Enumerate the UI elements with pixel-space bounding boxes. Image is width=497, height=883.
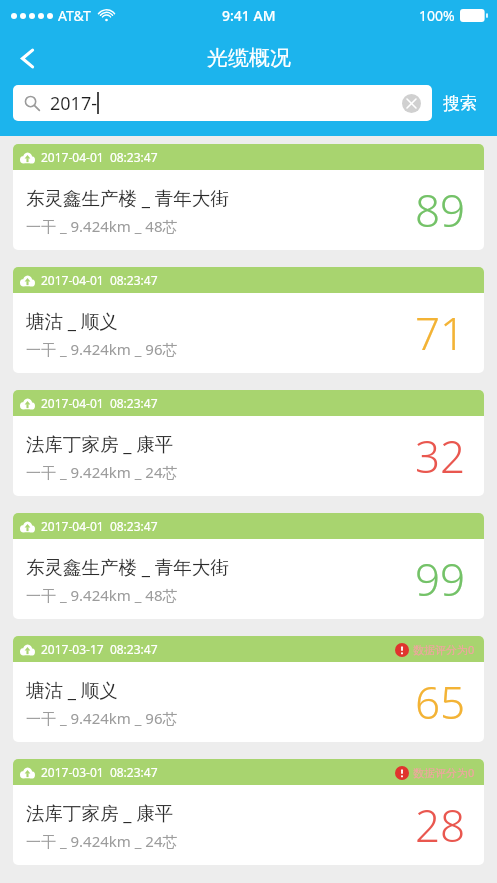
staticText: 光缆概况 [207,45,291,71]
staticText: 一干 _ 9.424km _ 48芯 [26,216,178,236]
staticText: 一干 _ 9.424km _ 96芯 [26,339,178,359]
staticText: 一干 _ 9.424km _ 24芯 [26,462,178,482]
staticText: 东灵鑫生产楼 _ 青年大街 [26,185,229,210]
staticText: 法库丁家房 _ 康平 [26,800,174,825]
staticText: 2017-03-01 08:23:47 [41,764,158,780]
staticText: 2017- [50,91,97,116]
staticText: 一干 _ 9.424km _ 48芯 [26,585,178,605]
staticText: 塘沽 _ 顺义 [26,308,118,333]
staticText: 数据评分为0 [413,765,475,780]
staticText: 100% [419,6,455,25]
staticText: AT&T [58,6,91,25]
staticText: 2017-03-17 08:23:47 [41,641,158,657]
staticText: 数据评分为0 [413,642,475,657]
staticText: 99 [415,549,466,609]
staticText: 法库丁家房 _ 康平 [26,431,174,456]
button[interactable]: 2017-04-01 08:23:47 [13,267,484,373]
staticText: 2017-04-01 08:23:47 [41,149,158,165]
staticText: 65 [415,672,466,732]
button[interactable]: 2017-04-01 08:23:47 [13,390,484,496]
button[interactable]: 2017- [13,85,432,121]
staticText: 2017-04-01 08:23:47 [41,272,158,288]
button[interactable]: 2017-04-01 08:23:47 [13,144,484,250]
button[interactable]: 2017-03-17 08:23:47 [13,636,484,742]
staticText: 9:41 AM [222,6,276,25]
staticText: 一干 _ 9.424km _ 96芯 [26,708,178,728]
button[interactable]: 搜索 [432,86,488,121]
staticText: 搜索 [443,93,477,114]
button[interactable]: 2017-04-01 08:23:47 [13,513,484,619]
staticText: 28 [415,795,466,855]
button[interactable]: Clear text [402,94,421,113]
staticText: 71 [415,303,466,363]
staticText: 塘沽 _ 顺义 [26,677,118,702]
staticText: 一干 _ 9.424km _ 24芯 [26,831,178,851]
staticText: 89 [415,180,466,240]
staticText: 32 [415,426,466,486]
button[interactable]: 2017-03-01 08:23:47 [13,759,484,865]
staticText: 2017-04-01 08:23:47 [41,395,158,411]
button[interactable]: Back [0,31,54,85]
staticText: 2017-04-01 08:23:47 [41,518,158,534]
staticText: 东灵鑫生产楼 _ 青年大街 [26,554,229,579]
